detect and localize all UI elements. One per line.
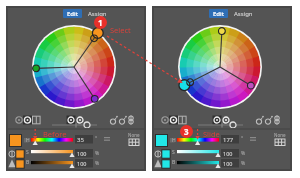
staticText: Slide [203,129,220,139]
staticText: 1 [98,17,103,28]
staticText: None [274,132,286,138]
staticText: 35 [77,136,84,144]
button[interactable]: Step 1 [94,16,107,29]
button[interactable]: Edit [209,9,228,18]
button[interactable]: Assign [85,9,109,18]
staticText: H [26,137,30,144]
staticText: % [241,160,246,167]
staticText: Before [43,129,67,139]
staticText: % [95,150,100,157]
staticText: % [95,160,100,167]
staticText: Edit [67,10,78,18]
staticText: Assign [234,10,253,18]
staticText: ° [95,135,98,142]
staticText: 100 [223,160,233,167]
staticText: Edit [213,10,224,18]
staticText: 100 [77,150,87,157]
button[interactable]: Step 3 [180,125,193,138]
staticText: 177 [223,136,234,144]
staticText: B [172,159,176,166]
button[interactable]: Assign [231,9,255,18]
staticText: S [26,149,29,156]
staticText: Assign [88,10,107,18]
staticText: 100 [223,150,233,157]
staticText: H [172,137,176,144]
staticText: 100 [77,160,87,167]
staticText: Select [110,25,131,35]
button[interactable]: Edit [63,9,82,18]
staticText: ° [241,135,244,142]
staticText: % [241,150,246,157]
staticText: B [26,159,30,166]
staticText: 3 [184,126,189,137]
staticText: S [172,149,175,156]
staticText: None [128,132,140,138]
